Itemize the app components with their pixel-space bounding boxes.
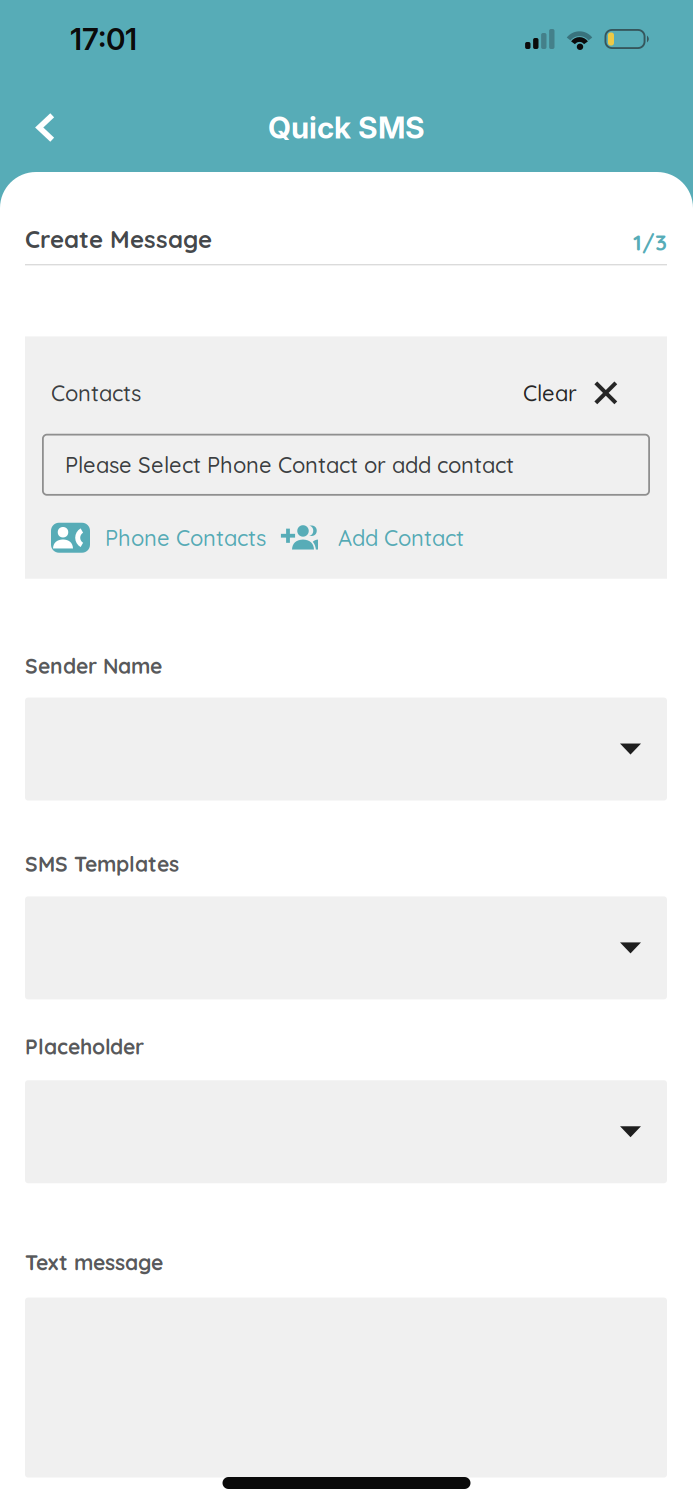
staticText: Add Contact <box>338 524 464 551</box>
button[interactable]: Select phone contact <box>42 434 650 496</box>
button[interactable]: Back <box>0 102 56 152</box>
button[interactable]: Phone Contacts <box>51 523 266 553</box>
staticText: Create Message <box>25 224 212 254</box>
staticText: Contacts <box>51 379 141 407</box>
staticText: Clear <box>523 379 577 407</box>
button[interactable]: Add Contact <box>266 524 464 551</box>
staticText: Phone Contacts <box>105 524 266 551</box>
staticText: Please Select Phone Contact or add conta… <box>65 451 514 478</box>
staticText: 1/3 <box>633 228 667 256</box>
button[interactable]: Text message <box>25 1298 667 1478</box>
staticText: Text message <box>25 1249 163 1275</box>
button[interactable]: Sender Name <box>25 698 667 801</box>
staticText: Quick SMS <box>268 109 425 146</box>
button[interactable]: SMS Templates <box>25 896 667 999</box>
staticText: 17:01 <box>70 21 137 57</box>
button[interactable]: Placeholder <box>25 1080 667 1183</box>
staticText: Sender Name <box>25 653 162 679</box>
staticText: SMS Templates <box>25 851 179 877</box>
button[interactable]: Clear contacts <box>523 379 618 407</box>
staticText: Placeholder <box>25 1033 144 1060</box>
